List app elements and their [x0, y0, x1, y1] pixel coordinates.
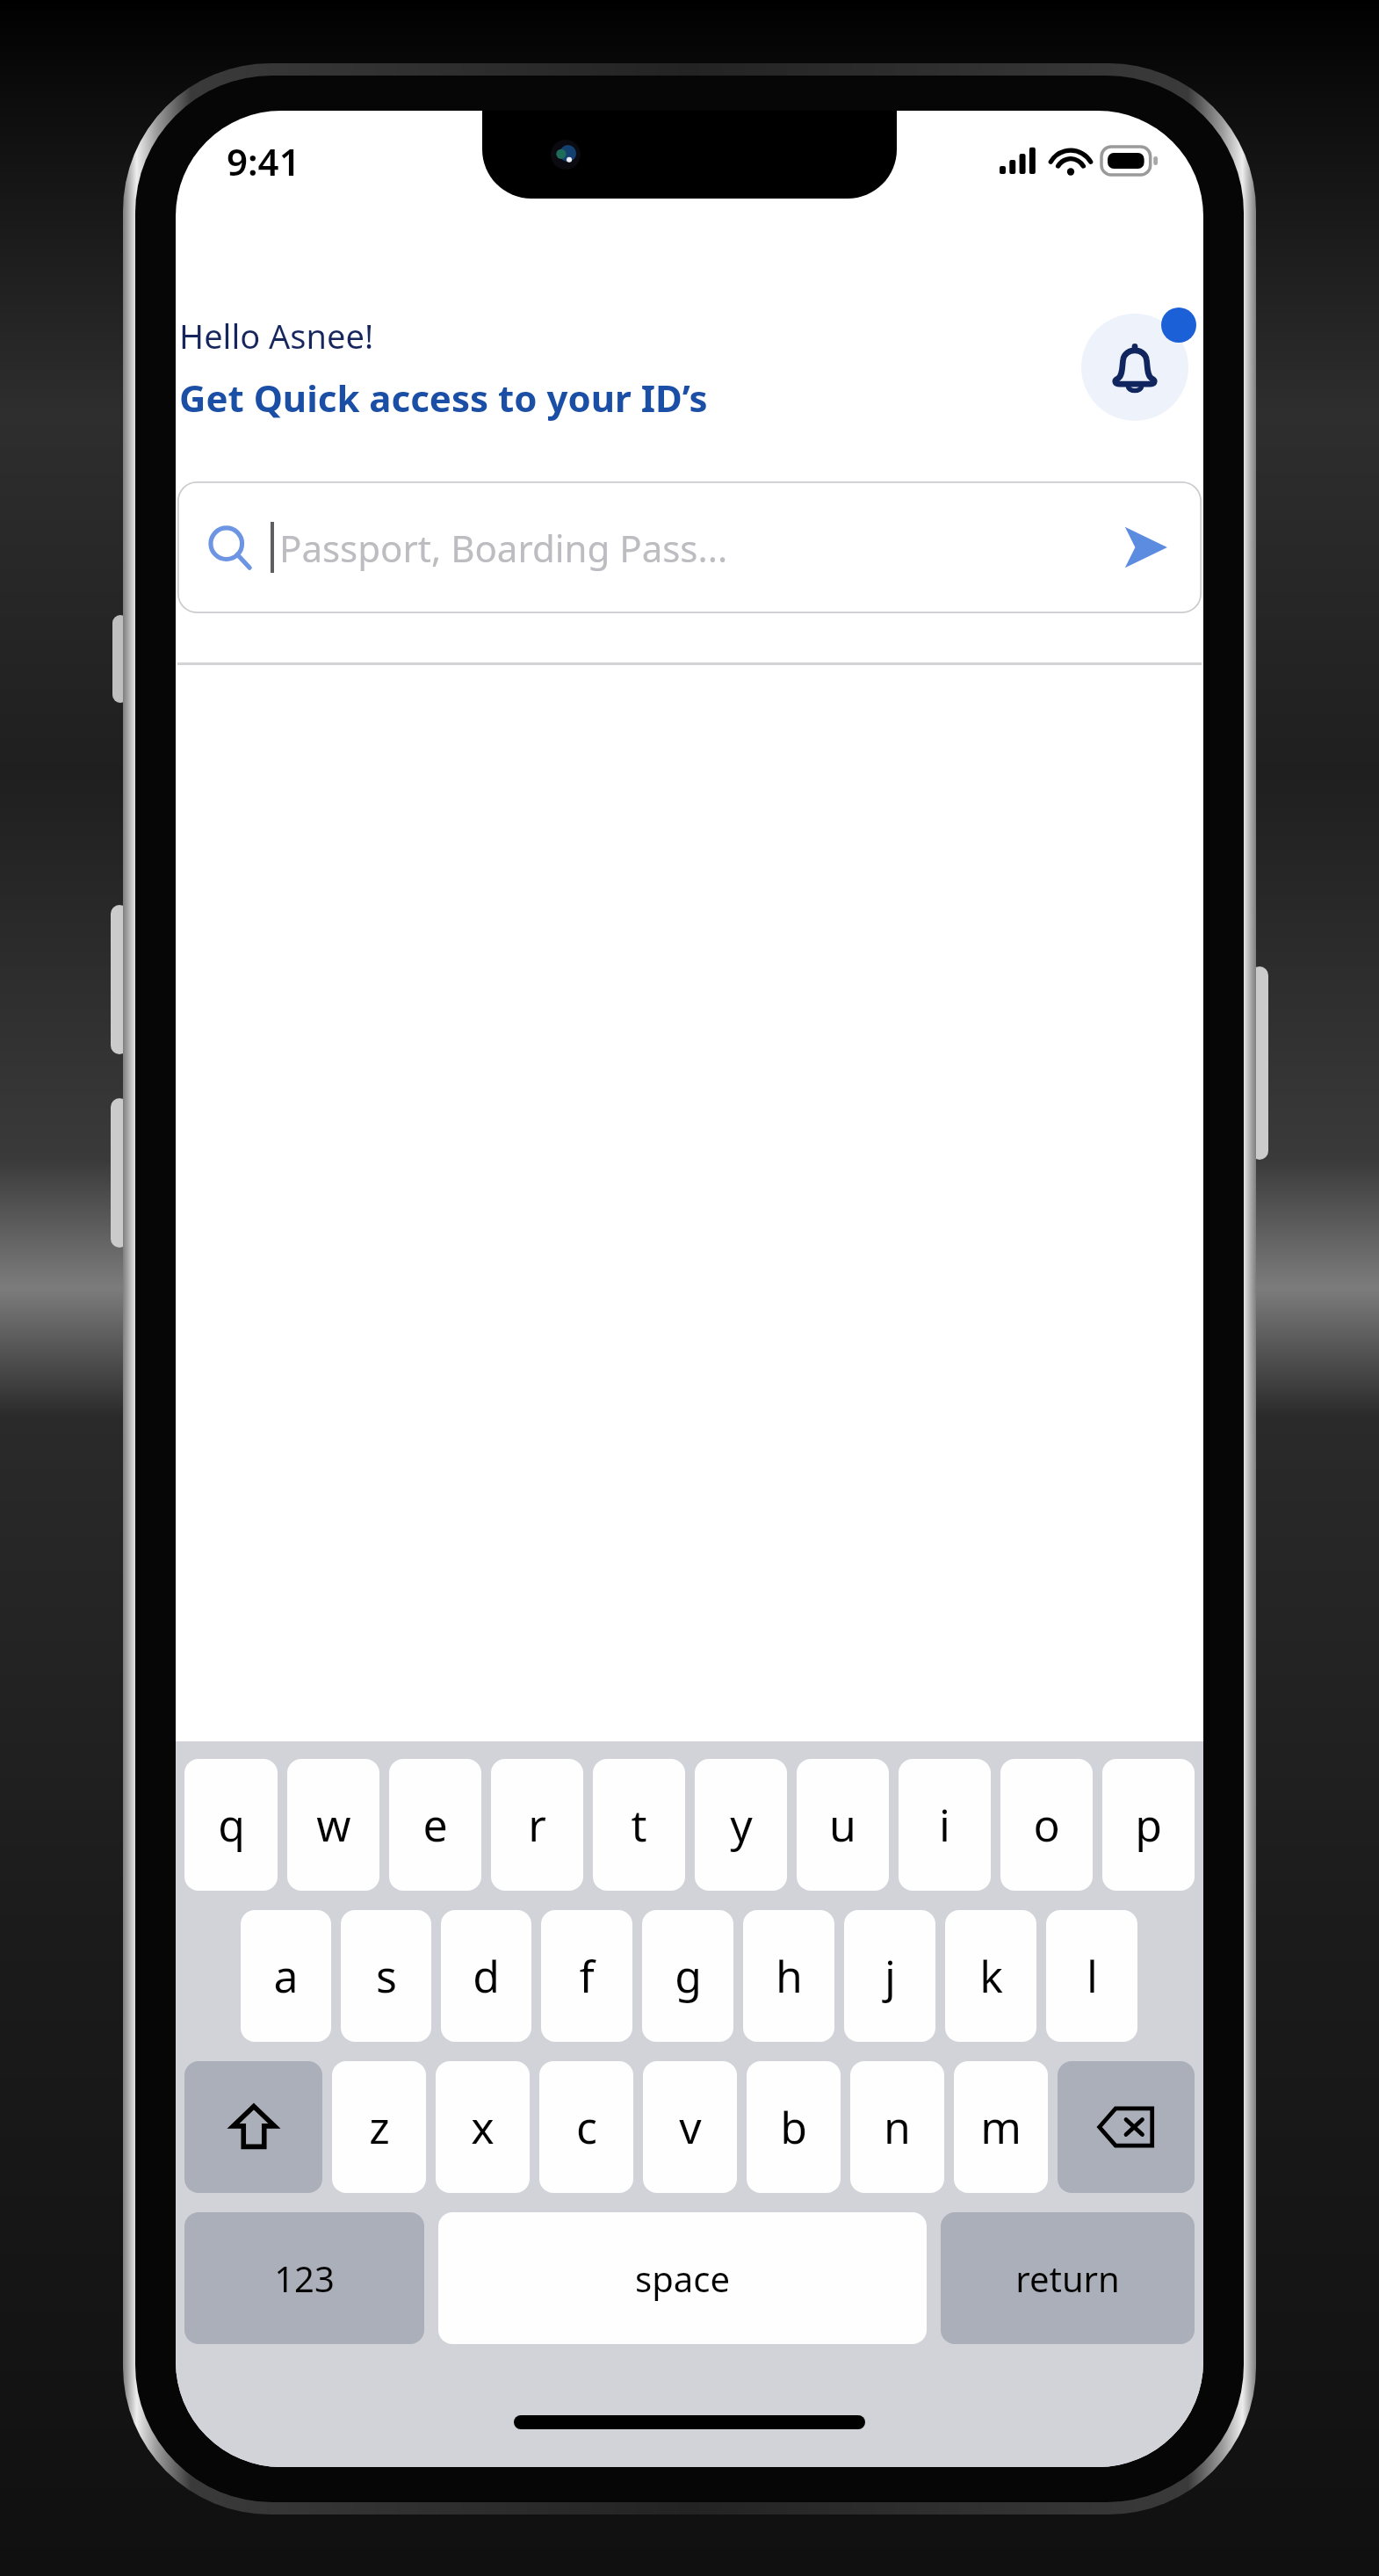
- button[interactable]: l: [1046, 1910, 1137, 2042]
- button[interactable]: Backspace: [1058, 2061, 1195, 2193]
- staticText: r: [528, 1795, 546, 1855]
- staticText: j: [884, 1946, 896, 2006]
- button[interactable]: k: [945, 1910, 1036, 2042]
- staticText: q: [218, 1795, 245, 1855]
- button[interactable]: u: [797, 1759, 889, 1891]
- button[interactable]: x: [436, 2061, 530, 2193]
- staticText: u: [829, 1795, 856, 1855]
- button[interactable]: y: [695, 1759, 787, 1891]
- button[interactable]: Shift: [184, 2061, 322, 2193]
- button[interactable]: p: [1102, 1759, 1195, 1891]
- button[interactable]: t: [593, 1759, 685, 1891]
- staticText: o: [1033, 1795, 1060, 1855]
- staticText: z: [369, 2097, 390, 2157]
- staticText: f: [579, 1946, 595, 2006]
- button[interactable]: h: [743, 1910, 834, 2042]
- staticText: i: [939, 1795, 950, 1855]
- button[interactable]: m: [954, 2061, 1048, 2193]
- staticText: t: [631, 1795, 647, 1855]
- staticText: l: [1087, 1946, 1098, 2006]
- staticText: space: [635, 2254, 730, 2302]
- button[interactable]: f: [541, 1910, 632, 2042]
- button[interactable]: Search: [1117, 519, 1173, 575]
- button[interactable]: b: [747, 2061, 841, 2193]
- staticText: Hello Asnee!: [179, 313, 374, 358]
- button[interactable]: e: [389, 1759, 481, 1891]
- button[interactable]: q: [184, 1759, 278, 1891]
- staticText: n: [884, 2097, 911, 2157]
- staticText: Passport, Boarding Pass...: [279, 523, 1117, 573]
- staticText: s: [376, 1946, 397, 2006]
- staticText: return: [1015, 2254, 1120, 2302]
- staticText: g: [675, 1946, 702, 2006]
- staticText: x: [471, 2097, 495, 2157]
- button[interactable]: g: [642, 1910, 733, 2042]
- staticText: a: [273, 1946, 299, 2006]
- button[interactable]: v: [643, 2061, 737, 2193]
- staticText: Get Quick access to your ID’s: [179, 373, 708, 423]
- staticText: 123: [274, 2254, 335, 2302]
- button[interactable]: Passport, Boarding Pass...: [177, 481, 1202, 613]
- button[interactable]: o: [1000, 1759, 1093, 1891]
- staticText: 9:41: [227, 136, 300, 186]
- button[interactable]: c: [539, 2061, 633, 2193]
- button[interactable]: d: [441, 1910, 531, 2042]
- staticText: c: [576, 2097, 597, 2157]
- staticText: v: [679, 2097, 702, 2157]
- button[interactable]: Notifications: [1070, 302, 1200, 432]
- staticText: p: [1135, 1795, 1162, 1855]
- button[interactable]: r: [491, 1759, 583, 1891]
- button[interactable]: z: [332, 2061, 426, 2193]
- staticText: h: [776, 1946, 803, 2006]
- button[interactable]: space: [438, 2212, 927, 2344]
- staticText: e: [422, 1795, 448, 1855]
- staticText: k: [979, 1946, 1003, 2006]
- staticText: b: [780, 2097, 807, 2157]
- button[interactable]: w: [287, 1759, 379, 1891]
- staticText: m: [980, 2097, 1022, 2157]
- button[interactable]: return: [941, 2212, 1195, 2344]
- staticText: y: [730, 1795, 753, 1855]
- button[interactable]: a: [241, 1910, 331, 2042]
- staticText: w: [316, 1795, 351, 1855]
- button[interactable]: n: [850, 2061, 944, 2193]
- button[interactable]: s: [341, 1910, 431, 2042]
- staticText: d: [473, 1946, 500, 2006]
- button[interactable]: 123: [184, 2212, 424, 2344]
- button[interactable]: i: [899, 1759, 991, 1891]
- button[interactable]: j: [844, 1910, 935, 2042]
